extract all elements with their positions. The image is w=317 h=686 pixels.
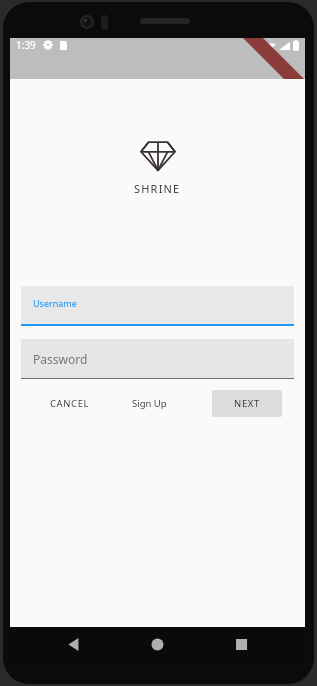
staticText: Sign Up xyxy=(132,397,167,410)
staticText: Username xyxy=(33,297,77,309)
button[interactable]: Password xyxy=(21,339,294,379)
staticText: SHRINE xyxy=(134,181,181,196)
staticText: Password xyxy=(33,351,88,367)
button[interactable]: NEXT xyxy=(212,390,282,417)
button[interactable]: CANCEL xyxy=(42,391,98,416)
button[interactable]: Sign Up xyxy=(124,391,175,416)
button[interactable]: Username xyxy=(21,286,294,326)
staticText: NEXT xyxy=(234,397,260,410)
staticText: 1:39 xyxy=(16,38,36,52)
staticText: CANCEL xyxy=(50,397,90,410)
